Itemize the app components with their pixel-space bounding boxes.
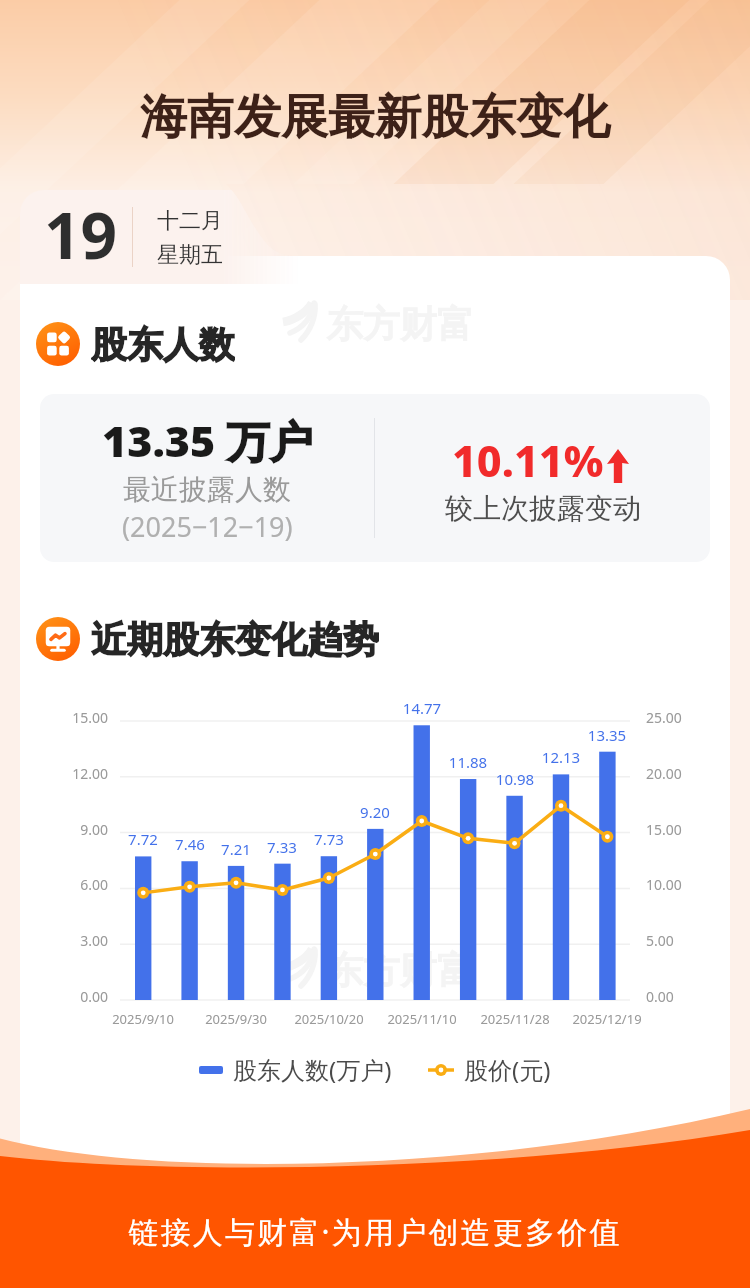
staticText: 11.88 [438,752,498,772]
staticText: 5.00 [646,931,674,950]
staticText: 6.00 [40,875,108,894]
staticText: 2025/9/10 [83,1010,203,1028]
staticText: 15.00 [40,708,108,727]
staticText: 7.73 [299,829,359,849]
staticText: 13.35 万户 [102,411,313,470]
staticText: 10.00 [646,875,682,894]
staticText: 最近披露人数 [123,472,291,507]
staticText: 东方财富 [326,301,474,348]
staticText: 9.20 [345,802,405,822]
staticText: 2025/9/30 [176,1010,296,1028]
staticText: 25.00 [646,708,682,727]
staticText: 3.00 [40,931,108,950]
button[interactable]: 股东人数 [36,322,235,366]
button[interactable]: 13.35 万户 [40,394,710,562]
staticText: 15.00 [646,820,682,839]
staticText: 7.46 [160,834,220,854]
staticText: 14.77 [392,698,452,718]
staticText: 0.00 [40,987,108,1006]
staticText: 12.00 [40,764,108,783]
staticText: 20.00 [646,764,682,783]
staticText: 链接人与财富·为用户创造更多价值 [0,1211,750,1252]
staticText: 2025/11/28 [455,1010,575,1028]
staticText: 10.11% [452,431,604,490]
staticText: 星期五 [157,241,223,269]
staticText: 9.00 [40,820,108,839]
staticText: 7.33 [252,837,312,857]
staticText: 7.72 [113,829,173,849]
staticText: 13.35 [577,725,637,745]
staticText: 股东人数(万户) [233,1053,392,1086]
staticText: 十二月 [157,207,223,235]
staticText: 海南发展最新股东变化 [0,88,750,147]
staticText: 东方财富 [326,947,474,994]
staticText: 股东人数 [91,322,235,366]
staticText: 0.00 [646,987,674,1006]
staticText: 12.13 [531,747,591,767]
other: 近期股东变化趋势 [36,617,80,661]
staticText: 2025/12/19 [547,1010,667,1028]
staticText: 10.98 [485,769,545,789]
staticText: 19 [44,191,118,278]
button[interactable]: 近期股东变化趋势 [36,617,379,661]
staticText: 股价(元) [464,1053,551,1086]
button[interactable]: 19 [20,190,281,284]
staticText: 2025/10/20 [269,1010,389,1028]
staticText: (2025−12−19) [122,508,293,545]
staticText: 2025/11/10 [362,1010,482,1028]
other: 股东人数 [36,322,80,366]
staticText: 7.21 [206,839,266,859]
staticText: 近期股东变化趋势 [91,617,379,661]
staticText: 较上次披露变动 [445,491,641,526]
